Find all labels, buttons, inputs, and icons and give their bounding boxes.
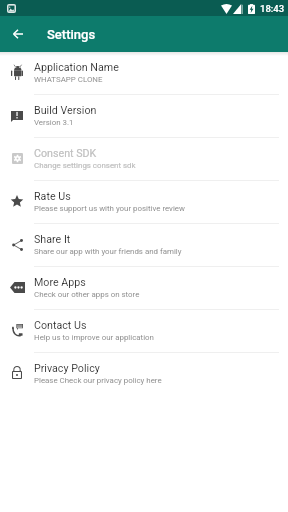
- button[interactable]: Contact Us: [0, 310, 288, 352]
- staticText: Please Check our privacy policy here: [34, 376, 162, 385]
- staticText: Application Name: [34, 61, 119, 74]
- staticText: Change settings consent sdk: [34, 161, 136, 170]
- staticText: Check our other apps on store: [34, 290, 140, 299]
- staticText: Settings: [47, 27, 96, 42]
- staticText: Help us to improve our application: [34, 333, 154, 342]
- staticText: 18:43: [260, 3, 285, 14]
- staticText: Build Version: [34, 104, 97, 117]
- button[interactable]: Build Version: [0, 95, 288, 137]
- staticText: Consent SDK: [34, 147, 97, 160]
- button[interactable]: Application Name: [0, 52, 288, 94]
- staticText: Share our app with your friends and fami…: [34, 247, 182, 256]
- staticText: Contact Us: [34, 319, 87, 332]
- staticText: Privacy Policy: [34, 362, 100, 375]
- staticText: More Apps: [34, 276, 86, 289]
- staticText: Share It: [34, 233, 71, 246]
- button[interactable]: More Apps: [0, 267, 288, 309]
- button[interactable]: Consent SDK: [0, 138, 288, 180]
- staticText: WHATSAPP CLONE: [34, 75, 103, 84]
- button[interactable]: Share It: [0, 224, 288, 266]
- button[interactable]: Back: [6, 22, 30, 46]
- staticText: Rate Us: [34, 190, 71, 203]
- staticText: Version 3.1: [34, 118, 74, 127]
- staticText: Please support us with your positive rev…: [34, 204, 185, 213]
- button[interactable]: Privacy Policy: [0, 353, 288, 395]
- button[interactable]: Rate Us: [0, 181, 288, 223]
